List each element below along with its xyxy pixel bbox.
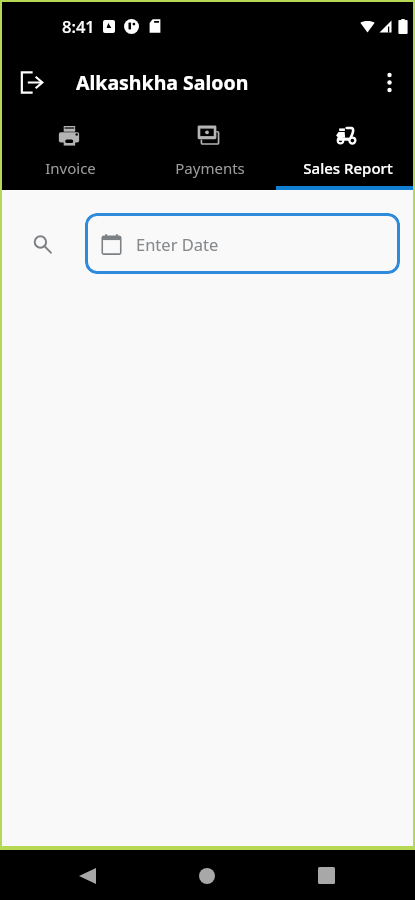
staticText: Sales Report <box>303 158 393 178</box>
button[interactable]: Invoice <box>2 110 139 190</box>
button[interactable]: Recent apps <box>306 855 347 896</box>
button[interactable]: Payments <box>139 110 276 190</box>
button[interactable]: Search <box>30 232 54 256</box>
button[interactable]: Enter Date <box>85 213 400 274</box>
button[interactable]: More options <box>368 61 410 103</box>
staticText: Enter Date <box>136 233 219 255</box>
staticText: Invoice <box>45 158 96 178</box>
button[interactable]: Logout <box>8 59 54 105</box>
button[interactable]: Back <box>67 855 108 896</box>
button[interactable]: Home <box>186 855 227 896</box>
staticText: 8:41 <box>62 15 95 37</box>
staticText: Alkashkha Saloon <box>76 69 249 96</box>
staticText: Payments <box>175 158 245 178</box>
button[interactable]: Sales Report <box>276 110 413 190</box>
